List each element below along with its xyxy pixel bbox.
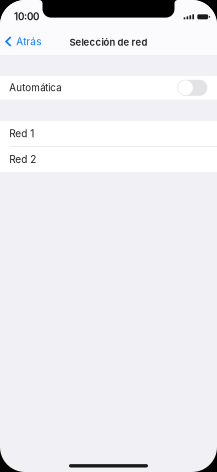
button[interactable]: Red 2 <box>0 147 217 172</box>
staticText: Automática <box>9 82 61 94</box>
staticText: 10:00 <box>14 11 39 23</box>
staticText: Atrás <box>16 35 41 48</box>
staticText: Red 1 <box>9 127 34 140</box>
staticText: Red 2 <box>9 153 36 165</box>
button[interactable]: Atrás <box>0 30 41 53</box>
button[interactable]: Automática <box>177 80 207 96</box>
staticText: Selección de red <box>69 36 147 48</box>
button[interactable]: Red 1 <box>0 121 217 146</box>
